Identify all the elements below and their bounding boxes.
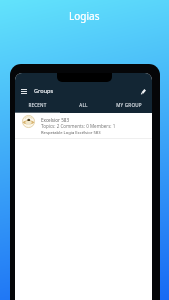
staticText: Excelsior 583 — [41, 117, 70, 123]
button[interactable]: Open navigation menu — [18, 85, 30, 97]
button[interactable]: Excelsior 583 — [15, 113, 152, 139]
staticText: Topics: 2 Comments: 0 Members: 1 — [41, 123, 116, 129]
button[interactable]: RECENT — [15, 99, 60, 113]
staticText: RECENT — [28, 102, 47, 108]
staticText: MY GROUP — [116, 102, 142, 108]
staticText: Respetable Logia Excélsior 583 — [41, 130, 101, 136]
staticText: Logias — [69, 9, 100, 23]
button[interactable]: MY GROUP — [106, 99, 152, 113]
staticText: Groups — [34, 87, 54, 95]
button[interactable]: ALL — [60, 99, 106, 113]
button[interactable]: Edit — [137, 85, 150, 98]
staticText: ALL — [79, 102, 88, 108]
